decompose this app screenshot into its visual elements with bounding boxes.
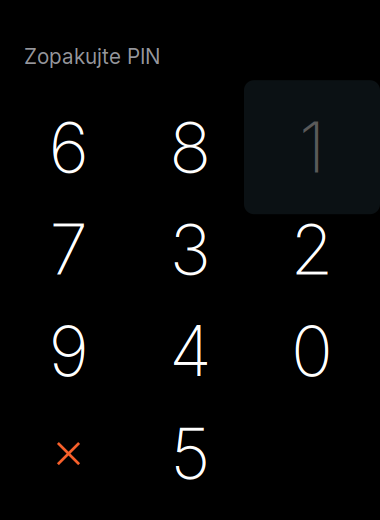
- button[interactable]: 8: [130, 97, 251, 197]
- staticText: 0: [291, 309, 333, 393]
- staticText: Zopakujte PIN: [24, 44, 161, 69]
- button[interactable]: 9: [8, 301, 129, 401]
- button[interactable]: 0: [251, 301, 372, 401]
- staticText: 4: [169, 309, 211, 393]
- staticText: 8: [169, 105, 211, 189]
- staticText: 9: [48, 309, 88, 393]
- button[interactable]: Cancel: [8, 404, 129, 504]
- button[interactable]: 3: [130, 199, 251, 299]
- staticText: 6: [48, 105, 88, 189]
- button[interactable]: 4: [130, 301, 251, 401]
- staticText: 5: [170, 412, 210, 496]
- staticText: 1: [299, 105, 325, 189]
- staticText: 2: [290, 207, 333, 291]
- button[interactable]: 2: [251, 199, 372, 299]
- button[interactable]: 6: [8, 97, 129, 197]
- button[interactable]: 1: [251, 97, 372, 197]
- staticText: 7: [49, 207, 87, 291]
- button[interactable]: 5: [130, 404, 251, 504]
- staticText: 3: [170, 207, 211, 291]
- button[interactable]: 7: [8, 199, 129, 299]
